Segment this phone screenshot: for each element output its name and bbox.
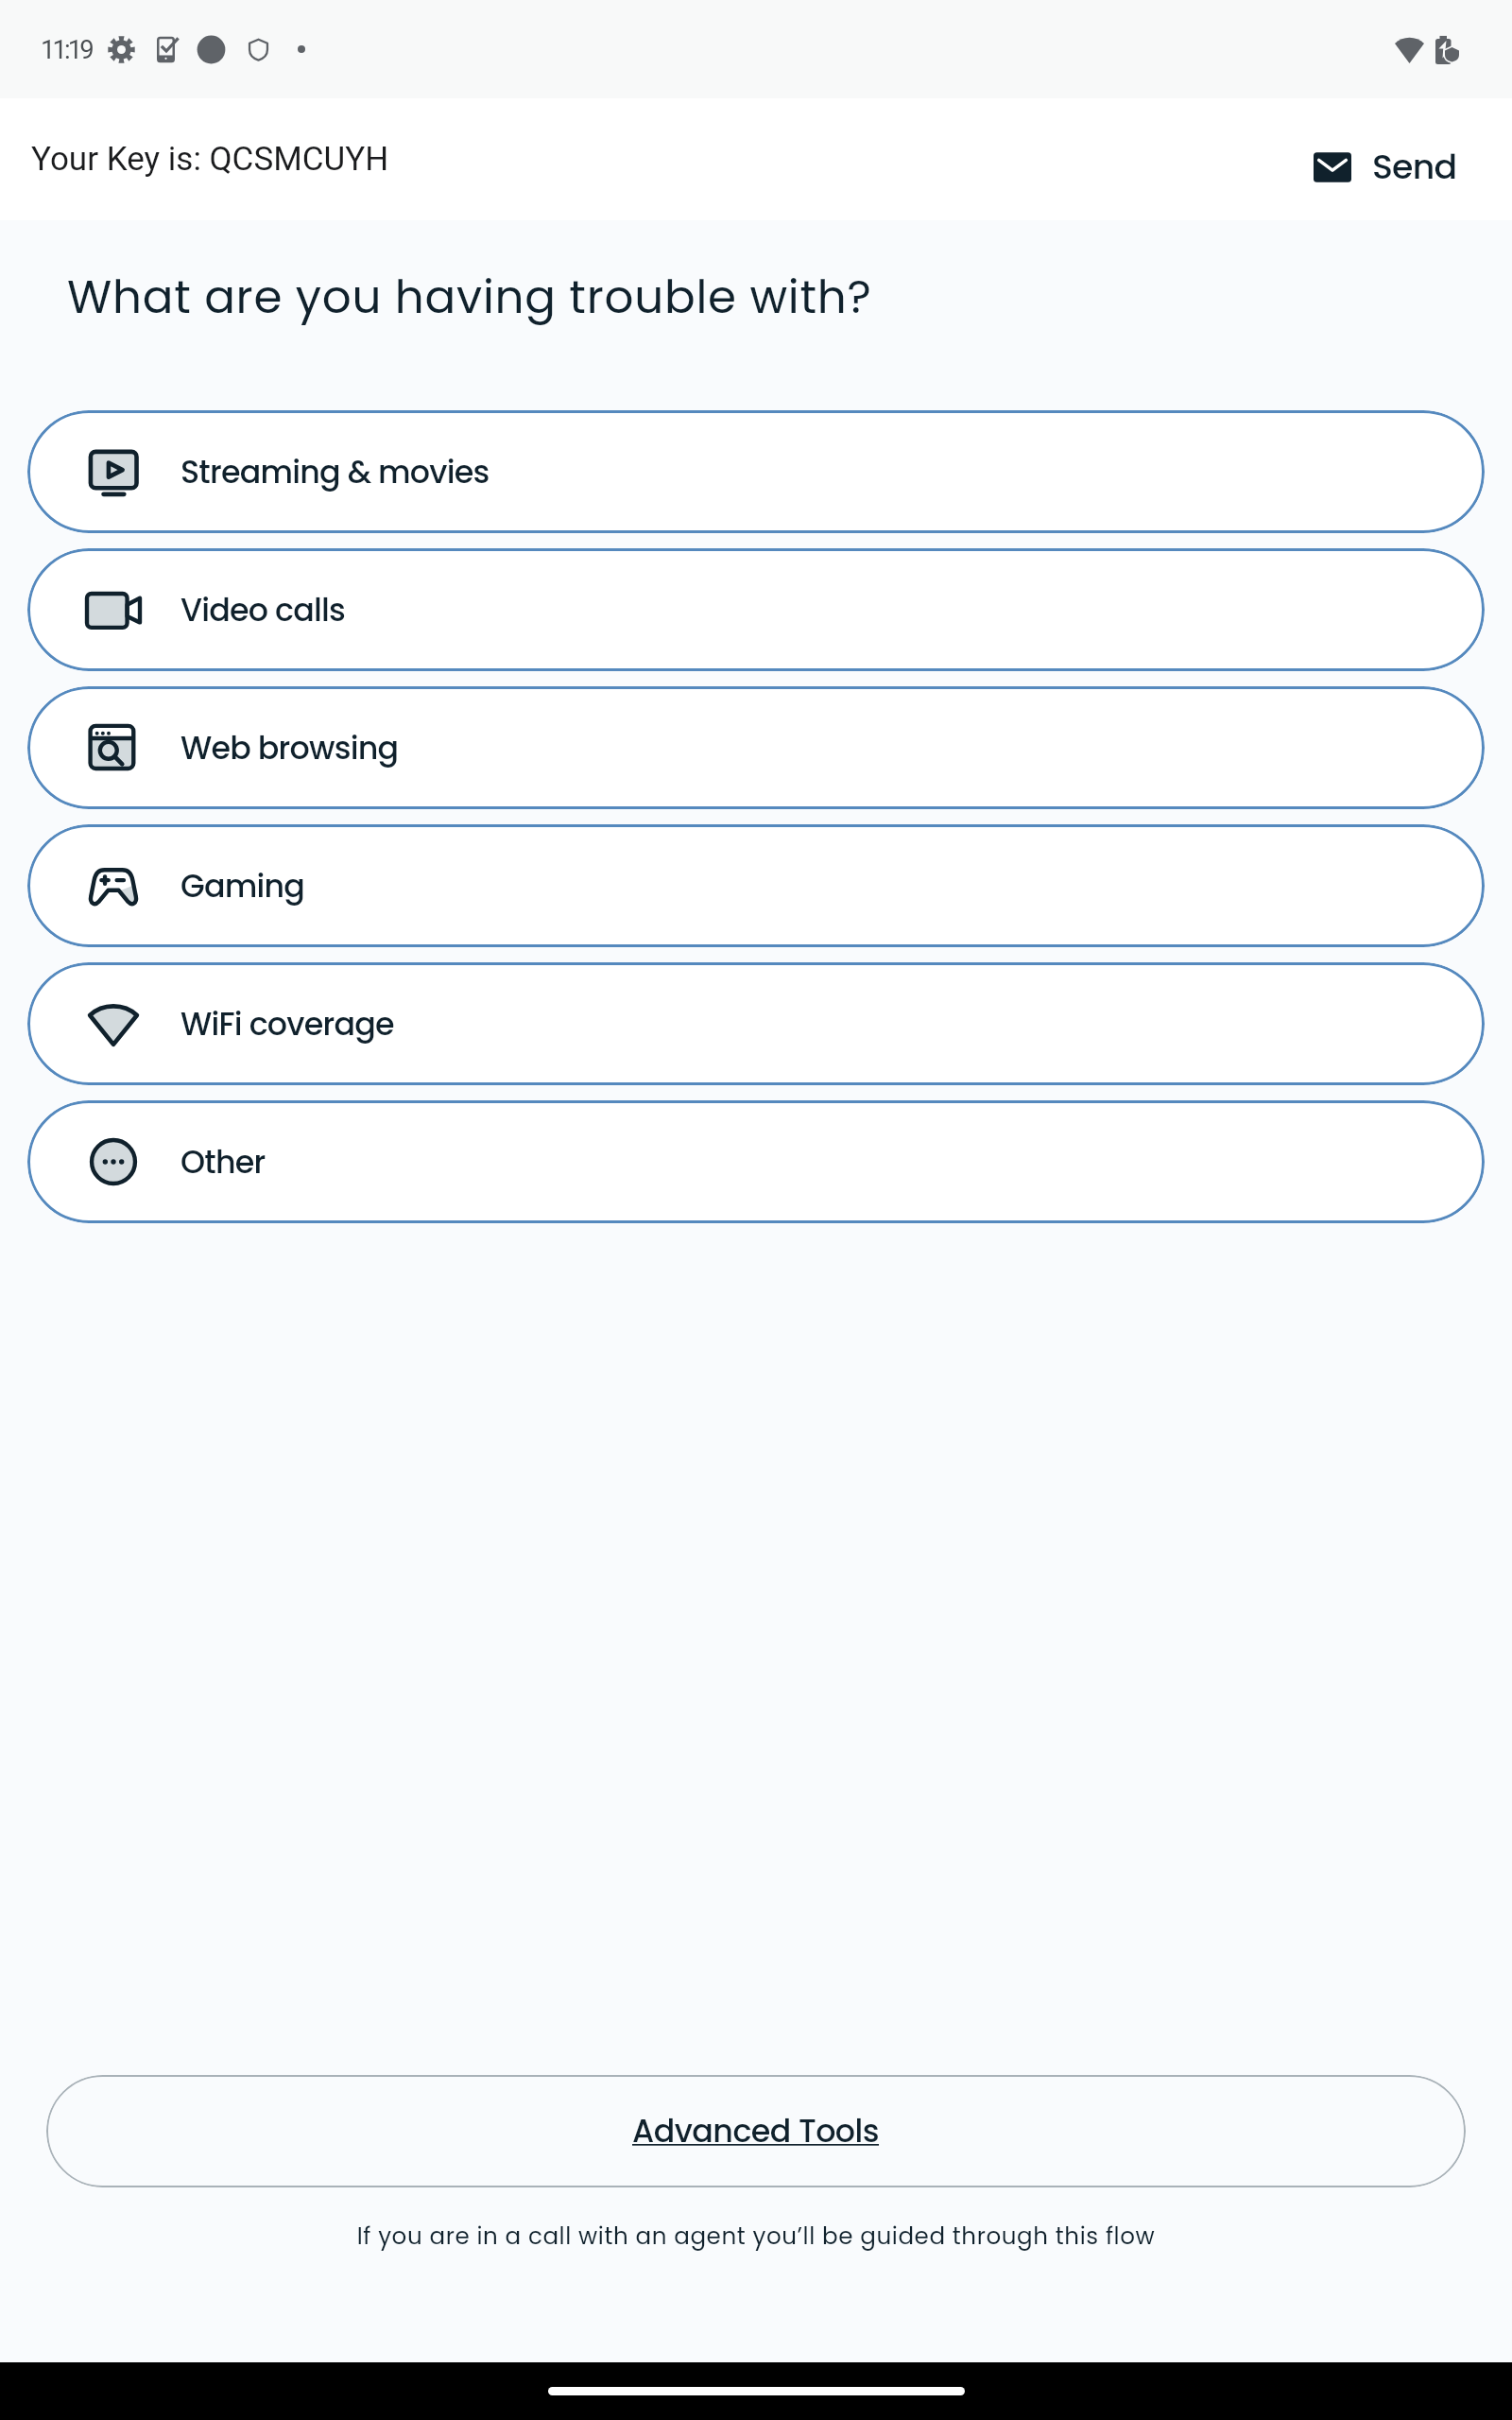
staticText: What are you having trouble with? <box>67 265 872 329</box>
staticText: WiFi coverage <box>180 1002 394 1046</box>
button[interactable]: Advanced Tools <box>46 2075 1466 2187</box>
staticText: Advanced Tools <box>632 2109 880 2153</box>
button[interactable]: Web browsing <box>27 686 1485 809</box>
staticText: If you are in a call with an agent you’l… <box>0 2220 1512 2252</box>
staticText: Other <box>180 1140 266 1184</box>
button[interactable]: Other <box>27 1100 1485 1223</box>
staticText: Streaming & movies <box>180 450 490 494</box>
button[interactable]: Video calls <box>27 548 1485 671</box>
staticText: 11:19 <box>41 34 92 64</box>
staticText: Video calls <box>180 588 346 632</box>
button[interactable]: Gaming <box>27 824 1485 947</box>
staticText: Send <box>1372 143 1457 191</box>
button[interactable]: Send key by email <box>1314 143 1457 191</box>
button[interactable]: Streaming & movies <box>27 410 1485 533</box>
staticText: Web browsing <box>180 726 399 770</box>
staticText: Gaming <box>180 864 305 908</box>
button[interactable]: WiFi coverage <box>27 962 1485 1085</box>
staticText: Your Key is: QCSMCUYH <box>31 140 389 179</box>
